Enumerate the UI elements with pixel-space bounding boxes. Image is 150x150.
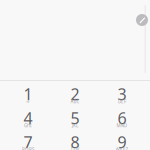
- staticText: MNO: [116, 122, 127, 129]
- button[interactable]: 9: [98, 135, 145, 150]
- staticText: ABC: [70, 98, 79, 105]
- button[interactable]: 6: [98, 111, 145, 135]
- button[interactable]: 3: [98, 87, 145, 111]
- staticText: WXYZ: [115, 146, 128, 150]
- button[interactable]: Compose: [136, 14, 148, 26]
- staticText: 8: [70, 131, 79, 150]
- staticText: JKL: [72, 122, 78, 129]
- staticText: GHI: [24, 122, 32, 129]
- button[interactable]: 5: [51, 111, 98, 135]
- staticText: 9: [117, 131, 126, 150]
- staticText: ∞: [26, 99, 30, 104]
- button[interactable]: 4: [4, 111, 51, 135]
- button[interactable]: 7: [4, 135, 51, 150]
- staticText: 2: [70, 83, 79, 105]
- button[interactable]: 2: [51, 87, 98, 111]
- button[interactable]: 8: [51, 135, 98, 150]
- staticText: 4: [23, 107, 32, 129]
- staticText: TUV: [70, 146, 79, 150]
- staticText: DEF: [118, 98, 126, 105]
- staticText: 1: [23, 83, 32, 105]
- staticText: 5: [70, 107, 79, 129]
- button[interactable]: 1: [4, 87, 51, 111]
- staticText: PQRS: [22, 146, 34, 150]
- staticText: 6: [117, 107, 126, 129]
- staticText: 7: [23, 131, 32, 150]
- staticText: 3: [117, 83, 126, 105]
